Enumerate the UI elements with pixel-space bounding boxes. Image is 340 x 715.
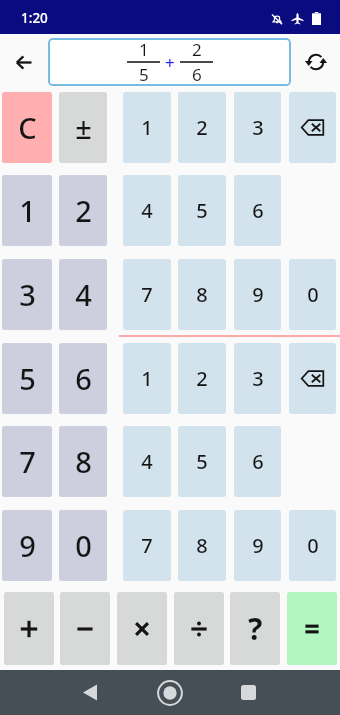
button[interactable]: 5 <box>178 175 226 246</box>
button[interactable]: 4 <box>123 175 171 246</box>
button[interactable]: 8 <box>178 510 226 581</box>
button[interactable]: 6 <box>234 175 281 246</box>
button[interactable]: 1 <box>123 92 171 163</box>
staticText: ± <box>75 108 92 147</box>
button[interactable]: Home <box>150 670 190 715</box>
staticText: 9 <box>19 526 36 565</box>
staticText: 7 <box>141 281 153 308</box>
staticText: 0 <box>75 526 92 565</box>
staticText: 3 <box>19 275 36 314</box>
button[interactable]: 9 <box>234 510 281 581</box>
button[interactable]: 7 <box>123 510 171 581</box>
button[interactable]: 7 <box>123 259 171 330</box>
staticText: 5 <box>196 448 208 475</box>
button[interactable]: C <box>2 92 52 163</box>
button[interactable]: Back <box>70 670 110 715</box>
button[interactable]: 6 <box>59 343 107 414</box>
button[interactable]: 1 <box>2 175 52 246</box>
button[interactable]: 1 <box>48 38 291 86</box>
button[interactable]: 0 <box>59 510 107 581</box>
staticText: 0 <box>307 532 319 559</box>
button[interactable]: 8 <box>59 426 107 497</box>
staticText: 1:20 <box>21 9 48 27</box>
staticText: 3 <box>252 114 264 141</box>
button[interactable]: 1 <box>123 343 171 414</box>
staticText: 4 <box>141 197 153 224</box>
staticText: + <box>165 51 175 74</box>
button[interactable]: 6 <box>234 426 281 497</box>
staticText: 6 <box>75 359 92 398</box>
button[interactable]: 9 <box>2 510 52 581</box>
button[interactable]: Recent apps <box>228 670 268 715</box>
button[interactable]: Help <box>230 592 280 665</box>
staticText: 6 <box>252 197 264 224</box>
staticText: 5 <box>19 359 36 398</box>
button[interactable]: Backspace <box>289 343 336 414</box>
staticText: 8 <box>75 442 92 481</box>
staticText: 6 <box>252 448 264 475</box>
staticText: 1 <box>141 365 153 392</box>
button[interactable]: 7 <box>2 426 52 497</box>
button[interactable]: 5 <box>178 426 226 497</box>
staticText: 1 <box>19 191 36 230</box>
button[interactable]: 5 <box>2 343 52 414</box>
staticText: 1 <box>139 38 149 61</box>
staticText: 6 <box>192 63 202 86</box>
button[interactable]: Equals <box>287 592 337 665</box>
staticText: ? <box>248 608 263 649</box>
button[interactable]: Swap fractions <box>296 42 336 82</box>
button[interactable]: 0 <box>289 259 336 330</box>
staticText: 2 <box>196 114 208 141</box>
button[interactable]: Plus <box>4 592 54 665</box>
button[interactable]: 2 <box>178 92 226 163</box>
staticText: 7 <box>141 532 153 559</box>
button[interactable]: 3 <box>2 259 52 330</box>
staticText: 3 <box>252 365 264 392</box>
button[interactable]: 2 <box>59 175 107 246</box>
button[interactable]: Divide <box>174 592 224 665</box>
button[interactable]: 0 <box>289 510 336 581</box>
button[interactable]: 9 <box>234 259 281 330</box>
button[interactable]: 4 <box>59 259 107 330</box>
staticText: 5 <box>196 197 208 224</box>
staticText: 9 <box>252 281 264 308</box>
staticText: 1 <box>141 114 153 141</box>
staticText: C <box>18 108 37 147</box>
button[interactable]: 3 <box>234 92 281 163</box>
staticText: 4 <box>141 448 153 475</box>
button[interactable]: Back <box>4 42 44 82</box>
button[interactable]: ± <box>59 92 107 163</box>
staticText: 8 <box>196 532 208 559</box>
staticText: 2 <box>192 38 202 61</box>
button[interactable]: 3 <box>234 343 281 414</box>
staticText: 5 <box>139 63 149 86</box>
button[interactable]: 2 <box>178 343 226 414</box>
staticText: 9 <box>252 532 264 559</box>
button[interactable]: 8 <box>178 259 226 330</box>
staticText: 0 <box>307 281 319 308</box>
staticText: 2 <box>75 191 92 230</box>
button[interactable]: Backspace <box>289 92 336 163</box>
staticText: 4 <box>75 275 92 314</box>
staticText: 7 <box>19 442 36 481</box>
button[interactable]: Multiply <box>117 592 167 665</box>
staticText: 2 <box>196 365 208 392</box>
button[interactable]: Minus <box>60 592 110 665</box>
staticText: 8 <box>196 281 208 308</box>
button[interactable]: 4 <box>123 426 171 497</box>
